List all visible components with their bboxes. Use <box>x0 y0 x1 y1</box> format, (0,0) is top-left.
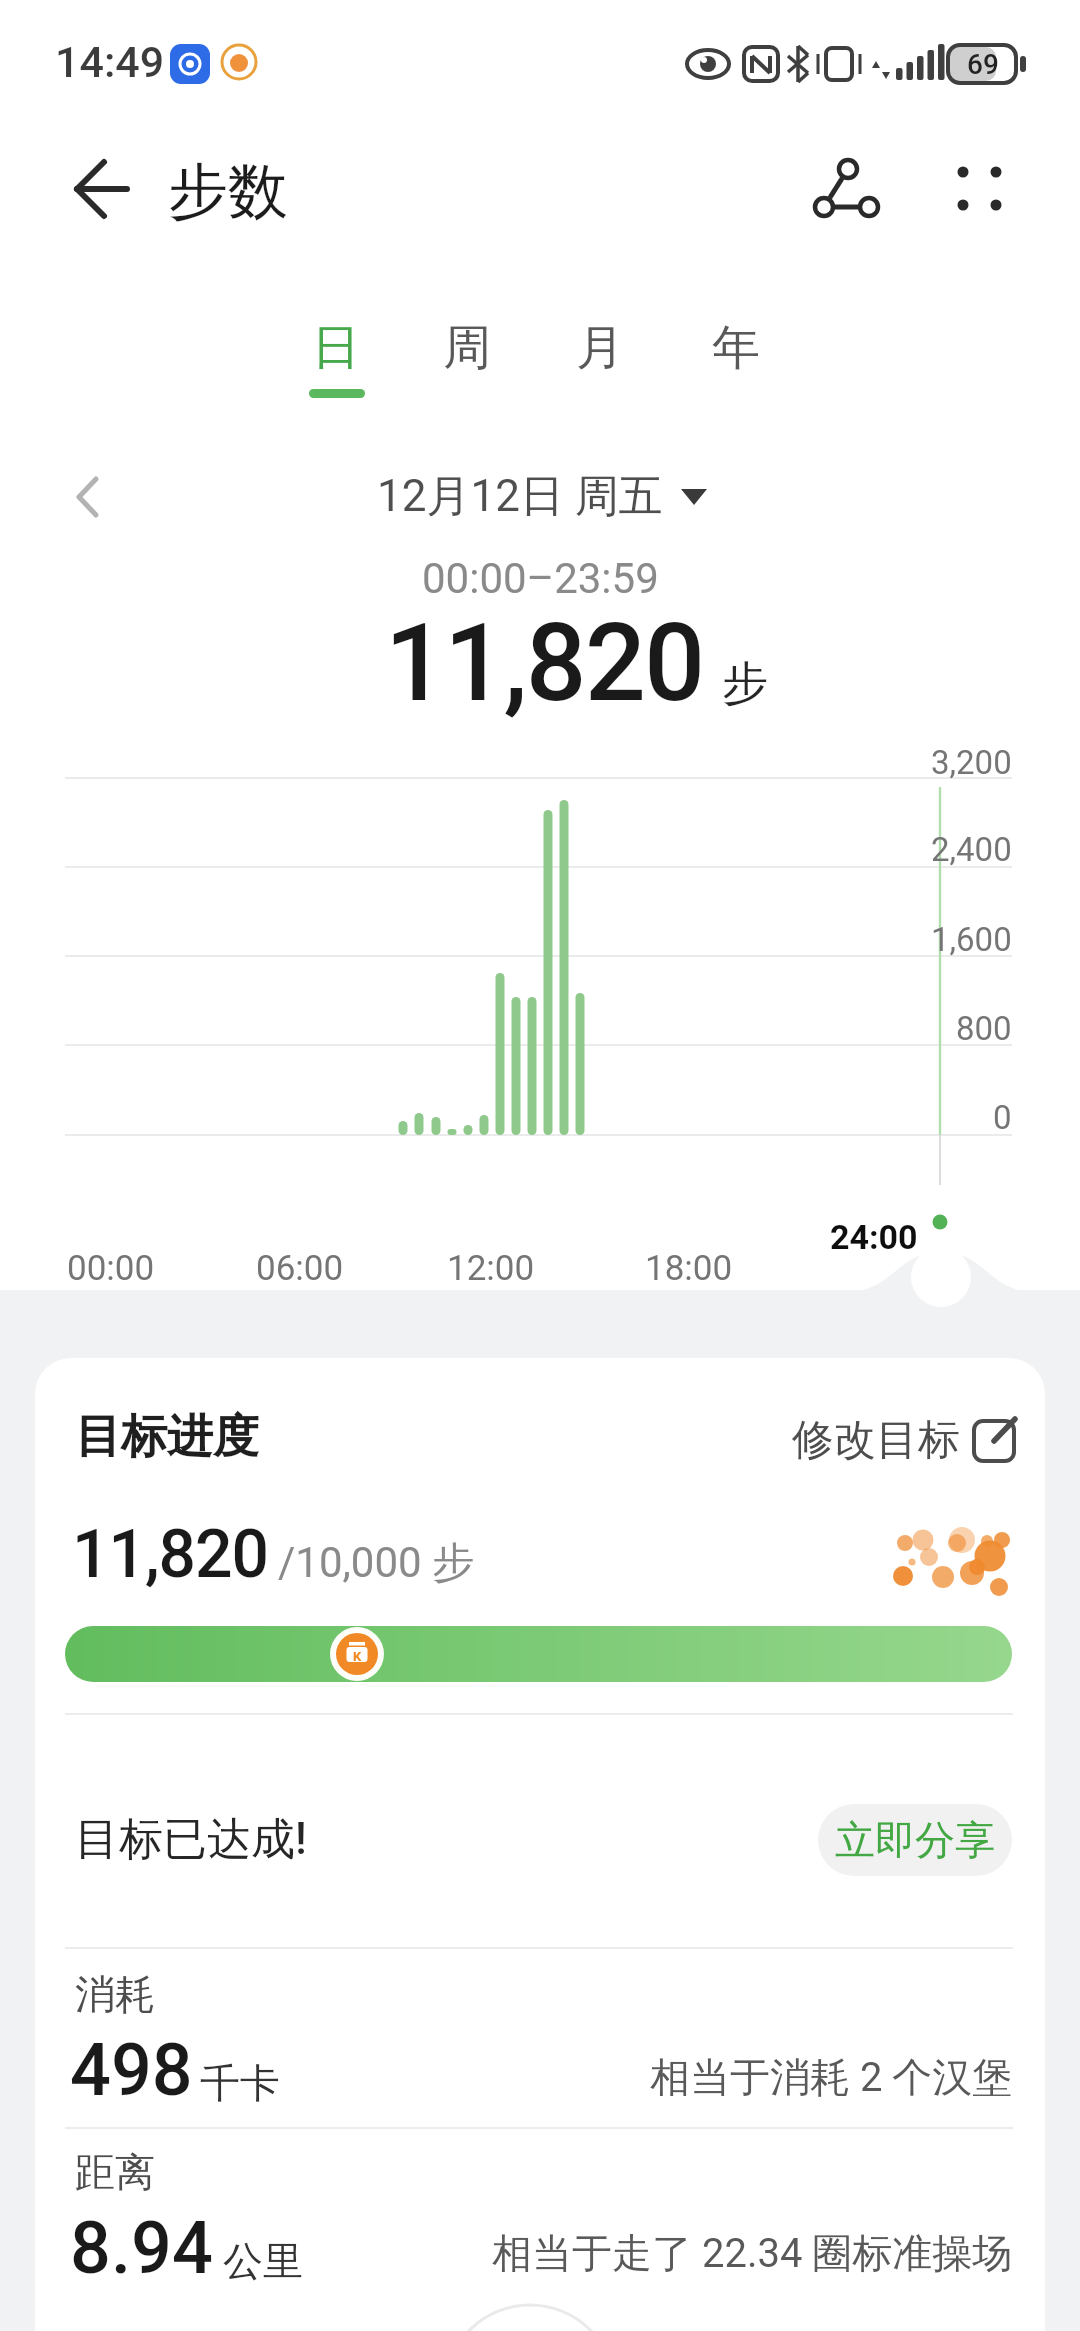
staticText: 公里 <box>223 2236 303 2286</box>
staticText: 12:00 <box>447 1248 535 1289</box>
staticText: 00:00–23:59 <box>422 554 659 603</box>
button[interactable]: 立即分享 <box>818 1804 1012 1876</box>
button[interactable]: 日 <box>281 300 391 396</box>
staticText: 0 <box>993 1098 1012 1137</box>
button[interactable] <box>800 148 890 230</box>
staticText: 800 <box>956 1009 1012 1048</box>
button[interactable]: 周 <box>412 300 522 396</box>
button[interactable] <box>940 150 1018 228</box>
button[interactable]: 年 <box>681 300 791 396</box>
staticText: 日 <box>312 318 360 378</box>
staticText: 12月12日 周五 <box>377 469 663 524</box>
button[interactable] <box>911 1247 971 1307</box>
staticText: 修改目标 <box>792 1414 960 1467</box>
staticText: 千卡 <box>200 2058 280 2108</box>
staticText: 14:49 <box>55 37 165 87</box>
button[interactable] <box>57 155 142 227</box>
staticText: 24:00 <box>830 1217 918 1257</box>
staticText: 69 <box>967 48 999 81</box>
staticText: 11,820 <box>385 601 704 726</box>
staticText: 月 <box>576 318 624 378</box>
staticText: 相当于消耗 2 个汉堡 <box>650 2052 1013 2102</box>
staticText: 步数 <box>168 154 288 230</box>
staticText: 相当于走了 22.34 圈标准操场 <box>492 2228 1013 2278</box>
staticText: 年 <box>712 318 760 378</box>
staticText: 498 <box>70 2028 193 2112</box>
button[interactable]: 月 <box>545 300 655 396</box>
staticText: 目标进度 <box>75 1408 259 1466</box>
button[interactable] <box>770 1406 1020 1472</box>
staticText: 00:00 <box>67 1248 155 1289</box>
staticText: 距离 <box>75 2147 155 2197</box>
button[interactable] <box>368 460 713 535</box>
staticText: 06:00 <box>256 1248 344 1289</box>
staticText: 消耗 <box>75 1969 155 2019</box>
staticText: 立即分享 <box>835 1815 995 1865</box>
staticText: 18:00 <box>645 1248 733 1289</box>
staticText: 2,400 <box>931 830 1012 869</box>
staticText: 周 <box>443 318 491 378</box>
staticText: 3,200 <box>931 743 1012 782</box>
staticText: 目标已达成! <box>75 1812 307 1867</box>
staticText: 8.94 <box>70 2206 213 2290</box>
staticText: 步 <box>722 655 768 713</box>
staticText: K <box>353 1649 362 1664</box>
staticText: 11,820 <box>72 1516 269 1593</box>
button[interactable] <box>55 462 121 532</box>
staticText: /10,000 步 <box>278 1537 475 1590</box>
staticText: 1,600 <box>931 920 1012 959</box>
